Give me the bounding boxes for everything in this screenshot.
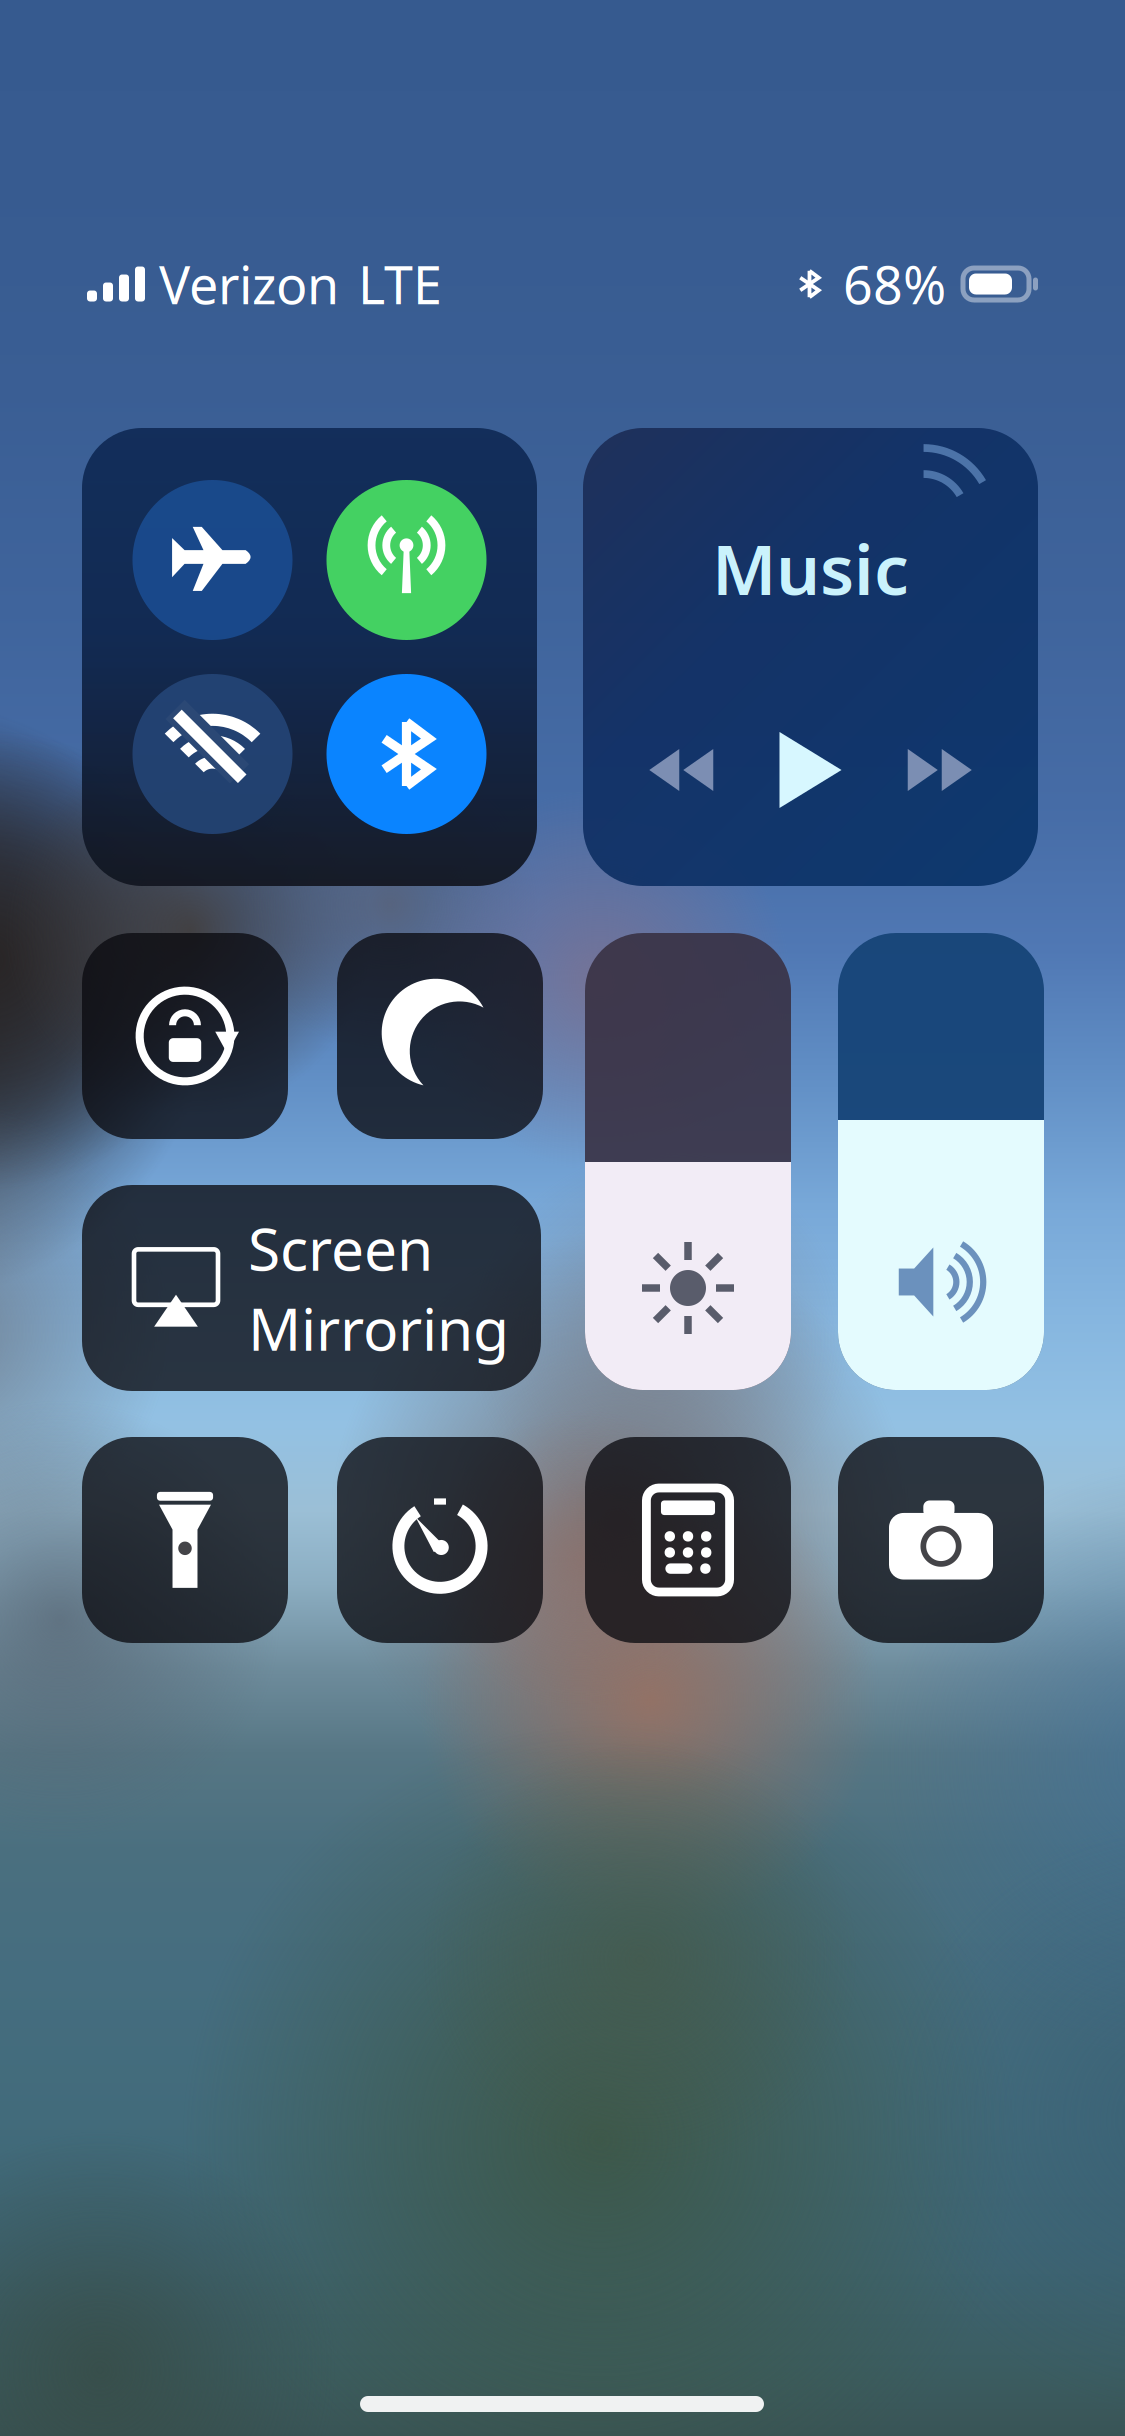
staticText: 68%	[843, 249, 946, 319]
staticText: Verizon	[159, 249, 339, 319]
button[interactable]: Screen Mirroring	[82, 1185, 541, 1391]
staticText: LTE	[358, 249, 442, 319]
button[interactable]: Do Not Disturb	[337, 933, 543, 1139]
button[interactable]: Rotation Lock	[82, 933, 288, 1139]
button[interactable]: Calculator	[585, 1437, 791, 1643]
button[interactable]: Volume	[838, 933, 1044, 1390]
staticText: Music	[712, 522, 909, 614]
button[interactable]: Bluetooth	[326, 674, 486, 834]
button[interactable]: Brightness	[585, 933, 791, 1390]
button[interactable]: Flashlight	[82, 1437, 288, 1643]
button[interactable]: Music	[583, 428, 1038, 886]
button[interactable]: Timer	[337, 1437, 543, 1643]
button[interactable]: Wi-Fi	[132, 674, 292, 834]
staticText: Screen	[248, 1209, 433, 1287]
button[interactable]: Airplane Mode	[132, 480, 292, 640]
button[interactable]: Camera	[838, 1437, 1044, 1643]
button[interactable]: Cellular Data	[326, 480, 486, 640]
staticText: Mirroring	[248, 1289, 509, 1367]
